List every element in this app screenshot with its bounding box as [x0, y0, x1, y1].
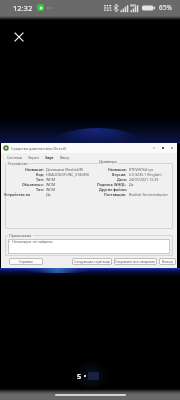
button[interactable]: Close	[167, 143, 176, 153]
staticText: WDM	[46, 187, 56, 192]
staticText: Тип:	[36, 187, 44, 192]
staticText: Код:	[36, 172, 44, 177]
button[interactable]: Close	[9, 27, 29, 47]
staticText: Выход	[162, 259, 173, 264]
button[interactable]: Звук	[44, 155, 55, 160]
button[interactable]: Ввод	[59, 155, 70, 160]
staticText: Дата:	[117, 177, 127, 182]
staticText: Драйверы	[99, 159, 117, 164]
staticText: Другие файлы:	[99, 187, 127, 192]
staticText: 6.0.9235.1 (English)	[129, 172, 162, 177]
staticText: • Неполадок не найдено.	[9, 239, 54, 244]
button[interactable]: Сохранить все сведения	[114, 258, 157, 265]
staticText: Название:	[25, 167, 44, 172]
staticText: RTKVHD64.sys	[129, 167, 154, 172]
button[interactable]: Maximize	[158, 143, 167, 153]
button[interactable]: Выход	[159, 258, 176, 265]
staticText: Да	[46, 192, 51, 197]
staticText: Устройство по умолчанию:	[4, 192, 44, 197]
staticText: HDAUDIO\FUNC_01&VEN_10E	[46, 172, 90, 177]
staticText: Примечания	[9, 233, 32, 238]
staticText: Поставщик:	[104, 192, 127, 197]
staticText: Устройство	[8, 161, 28, 166]
staticText: Название:	[108, 167, 127, 172]
staticText: Средство диагностики DirectX	[11, 146, 67, 151]
button[interactable]: Система	[6, 155, 23, 160]
staticText: Справка	[19, 259, 33, 264]
staticText: 24/07/2021 13:29	[129, 177, 159, 182]
staticText: 12:32	[13, 3, 33, 13]
staticText: Сохранить все сведения	[115, 259, 156, 264]
staticText: Ввод	[60, 155, 69, 160]
staticText: Обновлено:	[22, 182, 44, 187]
staticText: WDM	[46, 182, 56, 187]
staticText: Версия:	[112, 172, 127, 177]
button[interactable]: Справка	[9, 258, 43, 265]
staticText: Да	[129, 182, 134, 187]
staticText: WDM	[46, 177, 56, 182]
staticText: Динамики (Realtek(R) Audio	[46, 167, 90, 172]
button[interactable]: Экран	[27, 155, 40, 160]
staticText: Экран	[28, 155, 39, 160]
button[interactable]: Следующая страница	[72, 258, 112, 265]
staticText: 65%	[159, 3, 172, 12]
staticText: Подпись WHQL:	[97, 182, 127, 187]
staticText: Звук	[45, 155, 54, 160]
staticText: Realtek Semiconductor Corp.	[129, 192, 177, 197]
staticText: Следующая страница	[74, 259, 110, 264]
staticText: Система	[7, 155, 22, 160]
staticText: Тип:	[36, 177, 44, 182]
staticText: 5	[77, 371, 82, 381]
button[interactable]: Minimize	[149, 143, 158, 153]
